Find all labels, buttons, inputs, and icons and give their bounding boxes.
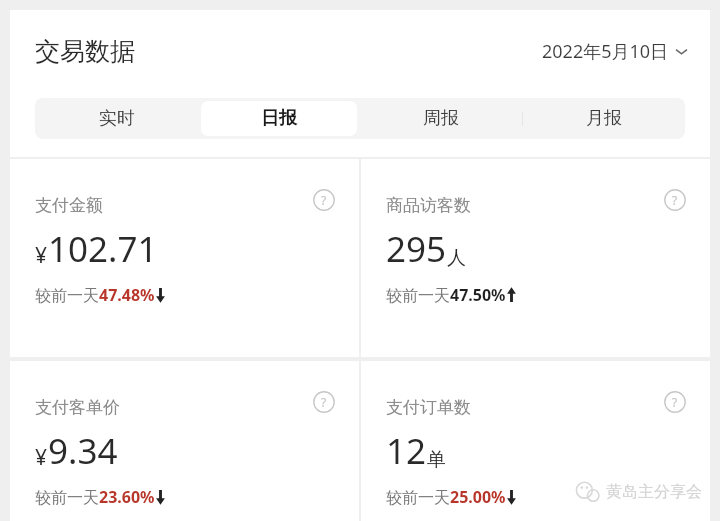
staticText: 较前一天23.60% — [35, 486, 155, 508]
staticText: 支付客单价 — [35, 397, 120, 418]
staticText: 黄岛主分享会 — [606, 482, 702, 502]
staticText: 日报 — [261, 107, 297, 130]
staticText: ? — [672, 394, 678, 410]
staticText: ? — [672, 192, 678, 208]
staticText: 周报 — [423, 107, 459, 130]
staticText: 支付金额 — [35, 195, 103, 216]
staticText: ? — [321, 394, 327, 410]
button[interactable]: 实时 — [38, 101, 195, 136]
staticText: ¥ — [35, 241, 48, 270]
staticText: 实时 — [99, 107, 135, 130]
button[interactable]: Help — [662, 389, 688, 415]
button[interactable]: Help — [311, 187, 337, 213]
staticText: 支付订单数 — [386, 397, 471, 418]
staticText: 商品访客数 — [386, 195, 471, 216]
staticText: 12 — [386, 427, 427, 475]
staticText: 102.71 — [48, 225, 158, 273]
button[interactable]: Help — [311, 389, 337, 415]
staticText: 2022年5月10日 — [542, 39, 669, 64]
button[interactable]: 商品访客数 — [361, 159, 710, 357]
staticText: 295 — [386, 225, 447, 273]
button[interactable]: 月报 — [526, 101, 682, 136]
button[interactable]: 2022年5月10日 — [542, 39, 688, 64]
staticText: 人 — [447, 246, 466, 270]
staticText: 较前一天47.50% — [386, 284, 506, 306]
staticText: 较前一天47.48% — [35, 284, 155, 306]
button[interactable]: 周报 — [363, 101, 519, 136]
button[interactable]: 支付订单数 — [361, 361, 710, 521]
staticText: ¥ — [35, 443, 48, 472]
button[interactable]: 支付金额 — [10, 159, 359, 357]
button[interactable]: Help — [662, 187, 688, 213]
staticText: 月报 — [586, 107, 622, 130]
button[interactable]: 日报 — [201, 101, 357, 136]
staticText: 9.34 — [48, 427, 118, 475]
staticText: 单 — [427, 448, 446, 472]
staticText: 较前一天25.00% — [386, 486, 506, 508]
button[interactable]: 支付客单价 — [10, 361, 359, 521]
staticText: 交易数据 — [35, 36, 135, 67]
staticText: ? — [321, 192, 327, 208]
